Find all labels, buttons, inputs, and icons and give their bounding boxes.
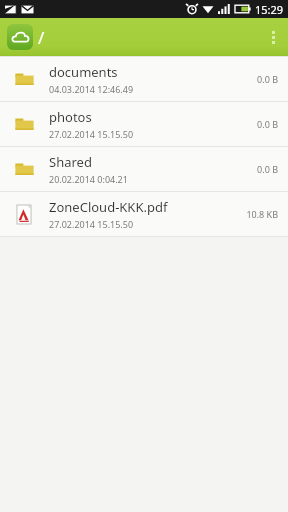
staticText: documents	[49, 63, 118, 81]
staticText: 27.02.2014 15.15.50	[49, 218, 134, 230]
staticText: 0.0 B	[257, 163, 278, 175]
button[interactable]: More options	[258, 18, 288, 56]
staticText: 27.02.2014 15.15.50	[49, 128, 134, 140]
button[interactable]: documents	[0, 57, 288, 101]
staticText: 04.03.2014 12:46.49	[49, 83, 134, 95]
staticText: 10.8 KB	[246, 208, 278, 220]
button[interactable]: photos	[0, 102, 288, 146]
staticText: 15:29	[255, 2, 284, 17]
staticText: 20.02.2014 0:04.21	[49, 173, 128, 185]
staticText: ZoneCloud-KKK.pdf	[49, 198, 168, 216]
button[interactable]: Shared	[0, 147, 288, 191]
staticText: /	[38, 26, 45, 49]
button[interactable]: ZoneCloud-KKK.pdf	[0, 192, 288, 236]
staticText: photos	[49, 108, 92, 126]
button[interactable]: Home	[7, 24, 33, 50]
staticText: 0.0 B	[257, 118, 278, 130]
staticText: 0.0 B	[257, 73, 278, 85]
staticText: Shared	[49, 153, 92, 171]
